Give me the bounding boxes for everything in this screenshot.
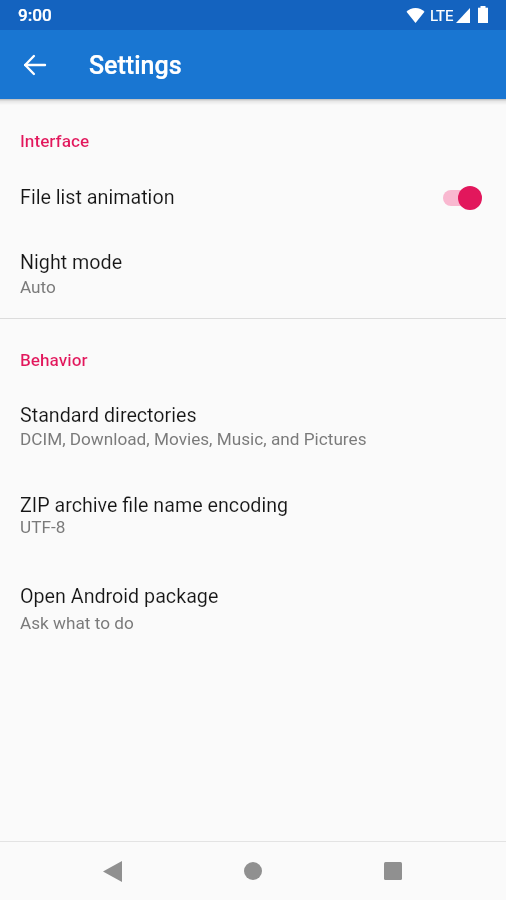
button[interactable]: Back [88,847,136,895]
staticText: File list animation [20,186,443,209]
staticText: Ask what to do [20,613,134,633]
staticText: Interface [20,131,90,151]
button[interactable]: Night mode [0,237,506,311]
staticText: Settings [89,51,182,80]
staticText: Behavior [20,350,88,370]
button[interactable]: ZIP archive file name encoding [0,480,506,551]
staticText: Night mode [20,251,123,274]
staticText: DCIM, Download, Movies, Music, and Pictu… [20,429,367,449]
button[interactable]: Open Android package [0,571,506,647]
staticText: LTE [430,7,454,25]
staticText: Standard directories [20,404,197,427]
staticText: UTF-8 [20,517,66,537]
staticText: 9:00 [18,5,52,25]
button[interactable]: File list animation [0,169,506,226]
button[interactable]: Recent apps [369,847,417,895]
staticText: Open Android package [20,585,219,608]
button[interactable]: Navigate up [7,37,63,93]
button[interactable]: Home [229,847,277,895]
button[interactable]: Standard directories [0,390,506,463]
staticText: Auto [20,277,56,297]
staticText: ZIP archive file name encoding [20,494,289,517]
